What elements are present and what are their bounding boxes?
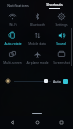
staticText: Mobile data — [28, 42, 46, 46]
button[interactable]: Multi-screen — [0, 48, 25, 67]
staticText: Auto — [53, 79, 61, 84]
other: Brightness — [5, 78, 11, 84]
staticText: Bluetooth — [30, 23, 45, 27]
staticText: Airplane mode — [26, 61, 49, 65]
button[interactable]: Screenshot — [49, 48, 73, 67]
staticText: Screenshot — [53, 61, 70, 65]
staticText: Wi-Fi — [9, 23, 17, 27]
button[interactable]: Notifications — [0, 0, 36, 10]
button[interactable]: Recents — [49, 116, 73, 129]
button[interactable]: Home — [25, 116, 49, 129]
staticText: Sound — [56, 42, 66, 46]
staticText: Auto-rotate — [4, 42, 22, 46]
staticText: Settings — [55, 23, 68, 27]
button[interactable]: Sound — [49, 29, 73, 48]
button[interactable]: Airplane mode — [25, 48, 49, 67]
staticText: Notifications — [7, 3, 29, 8]
button[interactable]: Mobile data — [25, 29, 49, 48]
button[interactable]: Wi-Fi — [0, 10, 25, 29]
button[interactable]: Bluetooth — [25, 10, 49, 29]
button[interactable]: Auto-rotate — [0, 29, 25, 48]
staticText: Shortcuts — [46, 2, 63, 7]
button[interactable]: Settings — [49, 10, 73, 29]
button[interactable] — [14, 76, 51, 86]
button[interactable]: Back — [0, 116, 25, 129]
staticText: Multi-screen — [3, 61, 22, 65]
button[interactable]: Auto brightness — [63, 79, 68, 84]
button[interactable]: Shortcuts — [36, 0, 73, 10]
